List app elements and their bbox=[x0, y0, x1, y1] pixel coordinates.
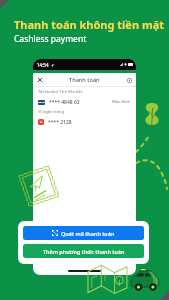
button[interactable]: Quét mã thanh toán bbox=[23, 226, 144, 240]
button[interactable]: **** 2128 bbox=[33, 117, 136, 127]
staticText: **** 4848 63 bbox=[49, 99, 80, 106]
button[interactable]: Thêm phương thức thanh toán bbox=[23, 244, 144, 258]
staticText: Thêm phương thức thanh toán bbox=[43, 248, 125, 255]
staticText: Thanh toán bbox=[69, 76, 100, 84]
staticText: Mặc định bbox=[112, 99, 131, 105]
staticText: Thanh toán không tiền mặt bbox=[14, 17, 165, 32]
staticText: **** 2128 bbox=[48, 119, 72, 126]
staticText: 14:54 bbox=[37, 62, 49, 68]
staticText: Ví ngân hàng bbox=[38, 109, 64, 115]
staticText: Tài khoản/ Thẻ liên kết bbox=[38, 89, 83, 95]
button[interactable]: **** 4848 63 bbox=[33, 97, 136, 107]
button[interactable]: Help bbox=[124, 75, 134, 85]
staticText: Quét mã thanh toán bbox=[61, 230, 115, 237]
staticText: Cashless payment bbox=[14, 33, 87, 45]
button[interactable]: Close bbox=[35, 75, 45, 85]
